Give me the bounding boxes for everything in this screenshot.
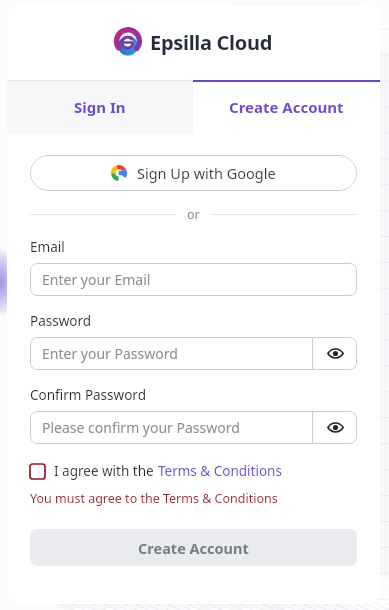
staticText: Please confirm your Password: [42, 418, 240, 437]
button[interactable]: Please confirm your Password: [30, 411, 312, 444]
button[interactable]: Sign In: [7, 80, 193, 134]
staticText: Email: [30, 238, 65, 256]
button[interactable]: I agree with the: [30, 462, 282, 480]
button[interactable]: Create Account: [193, 80, 380, 134]
staticText: You must agree to the Terms & Conditions: [30, 490, 278, 507]
staticText: Create Account: [229, 97, 344, 117]
button[interactable]: Show password: [313, 337, 357, 370]
staticText: or: [187, 206, 200, 223]
staticText: I agree with the: [54, 462, 158, 480]
staticText: Sign In: [74, 97, 126, 117]
staticText: Sign Up with Google: [137, 163, 276, 183]
staticText: Epsilla Cloud: [150, 29, 272, 56]
button[interactable]: Enter your Password: [30, 337, 312, 370]
button[interactable]: Sign Up with Google: [30, 155, 357, 191]
button[interactable]: Create Account: [30, 529, 357, 566]
button[interactable]: Enter your Email: [30, 263, 357, 296]
button[interactable]: Show password: [313, 411, 357, 444]
staticText: Enter your Email: [42, 270, 151, 289]
staticText: Create Account: [138, 538, 249, 558]
button[interactable]: Terms & Conditions: [158, 462, 282, 480]
staticText: Enter your Password: [42, 344, 178, 363]
staticText: Confirm Password: [30, 386, 146, 404]
staticText: Password: [30, 312, 92, 330]
